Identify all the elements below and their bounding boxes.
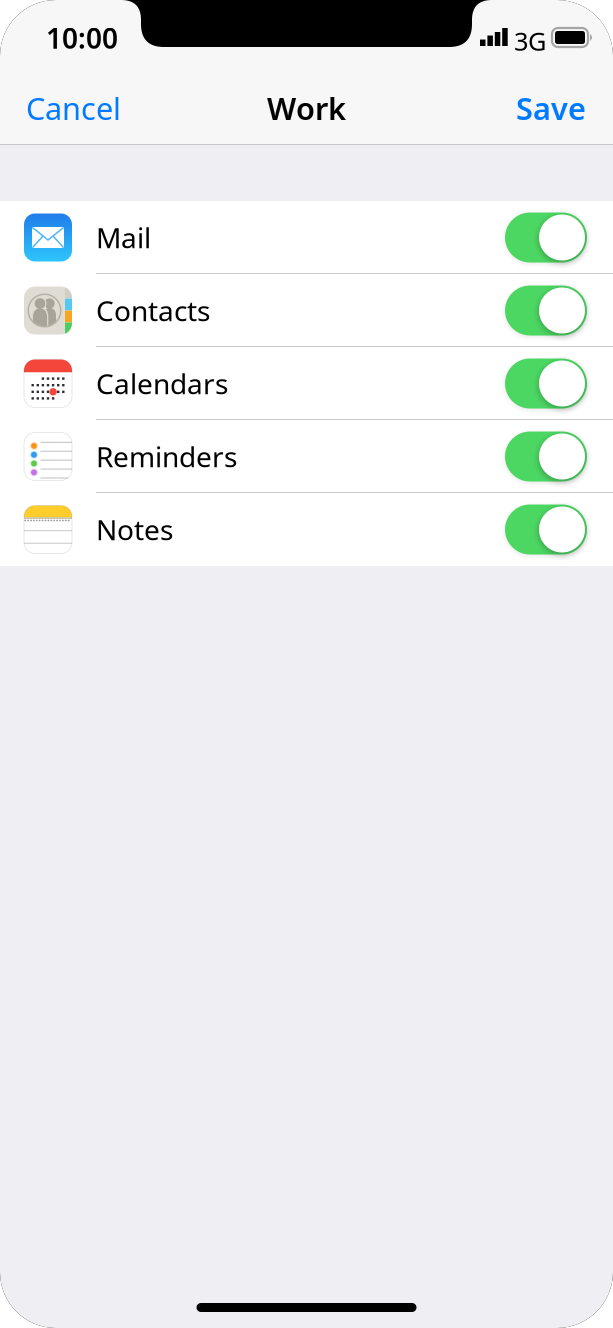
button[interactable]: Reminders — [0, 420, 613, 493]
staticText: Mail — [96, 219, 151, 256]
button[interactable]: Contacts — [0, 274, 613, 347]
staticText: Calendars — [96, 365, 228, 402]
staticText: 10:00 — [46, 19, 118, 57]
button[interactable]: Cancel — [0, 82, 150, 144]
button[interactable]: Save — [463, 82, 613, 144]
staticText: Reminders — [96, 438, 237, 475]
button[interactable]: Notes — [0, 493, 613, 566]
button[interactable]: Calendars — [0, 347, 613, 420]
staticText: Save — [516, 88, 586, 128]
staticText: Contacts — [96, 292, 210, 329]
button[interactable]: Mail — [0, 201, 613, 274]
staticText: Notes — [96, 511, 173, 548]
staticText: 3G — [514, 24, 546, 58]
staticText: Cancel — [26, 88, 121, 128]
staticText: Work — [267, 88, 346, 128]
